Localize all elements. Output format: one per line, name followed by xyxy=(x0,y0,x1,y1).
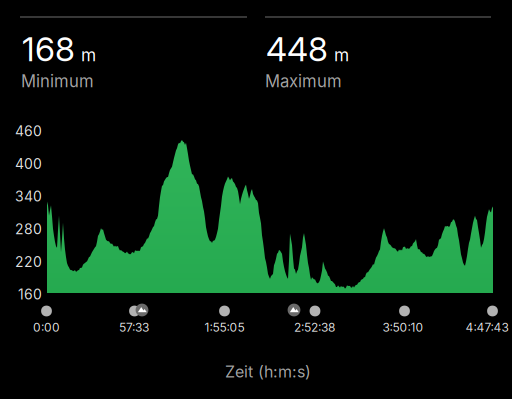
staticText: 280 xyxy=(15,221,42,238)
staticText: 220 xyxy=(15,253,42,270)
staticText: 3:50:10 xyxy=(382,320,423,334)
staticText: 2:52:38 xyxy=(294,320,335,334)
staticText: m xyxy=(81,44,96,65)
staticText: 460 xyxy=(15,123,42,140)
staticText: Zeit (h:m:s) xyxy=(225,362,311,381)
staticText: Maximum xyxy=(265,71,342,91)
staticText: 448 xyxy=(266,29,328,69)
staticText: 340 xyxy=(15,188,42,205)
staticText: 4:47:43 xyxy=(465,320,508,334)
staticText: 400 xyxy=(15,155,42,172)
staticText: 160 xyxy=(18,286,42,303)
staticText: Minimum xyxy=(21,71,94,91)
staticText: m xyxy=(334,44,349,65)
staticText: 57:33 xyxy=(119,320,149,334)
staticText: 0:00 xyxy=(33,320,60,334)
staticText: 1:55:05 xyxy=(204,320,244,334)
staticText: 168 xyxy=(22,29,75,69)
